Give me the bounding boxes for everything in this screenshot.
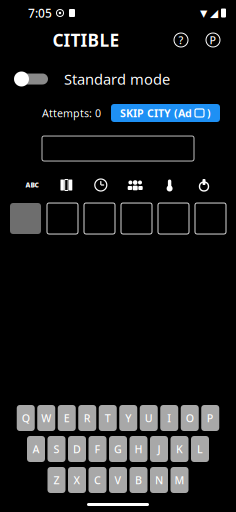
button[interactable]: X: [68, 467, 86, 493]
button[interactable]: C: [88, 467, 106, 493]
staticText: SKIP CITY (Ad: [120, 106, 192, 120]
staticText: Z: [53, 473, 59, 487]
staticText: R: [84, 411, 91, 425]
button[interactable]: L: [191, 436, 209, 462]
staticText: ): [207, 106, 211, 120]
button[interactable]: Help: [172, 31, 190, 49]
staticText: T: [105, 411, 111, 425]
button[interactable]: F: [88, 436, 106, 462]
staticText: I: [167, 411, 171, 425]
staticText: A: [32, 442, 39, 456]
staticText: M: [174, 473, 184, 487]
staticText: E: [64, 411, 70, 425]
staticText: CITIBLE: [52, 28, 119, 51]
button[interactable]: P: [201, 405, 219, 431]
button[interactable]: M: [170, 467, 188, 493]
staticText: ABC: [25, 181, 38, 189]
staticText: B: [135, 473, 142, 487]
staticText: Q: [22, 411, 30, 425]
button[interactable]: K: [170, 436, 188, 462]
button[interactable]: I: [160, 405, 178, 431]
staticText: L: [197, 442, 203, 456]
staticText: J: [157, 442, 160, 456]
button[interactable]: Z: [47, 467, 65, 493]
staticText: ◢: [210, 7, 218, 19]
staticText: S: [53, 442, 59, 456]
staticText: G: [114, 442, 122, 456]
button[interactable]: U: [140, 405, 158, 431]
button[interactable]: J: [150, 436, 168, 462]
staticText: 7:05: [28, 5, 52, 21]
staticText: O: [186, 411, 194, 425]
button[interactable]: Q: [17, 405, 35, 431]
staticText: X: [73, 473, 80, 487]
staticText: F: [94, 442, 100, 456]
button[interactable]: W: [37, 405, 55, 431]
staticText: Attempts: 0: [42, 106, 101, 120]
staticText: P: [207, 411, 214, 425]
button[interactable]: R: [78, 405, 96, 431]
button[interactable]: A: [27, 436, 45, 462]
button[interactable]: S: [47, 436, 65, 462]
staticText: ▾: [200, 5, 207, 21]
button[interactable]: H: [129, 436, 147, 462]
button[interactable]: Profile: [204, 31, 222, 49]
staticText: V: [114, 473, 121, 487]
staticText: W: [41, 411, 51, 425]
button[interactable]: V: [109, 467, 127, 493]
button[interactable]: E: [58, 405, 76, 431]
staticText: Y: [125, 411, 131, 425]
staticText: Standard mode: [64, 69, 170, 89]
button[interactable]: SKIP CITY (Ad: [111, 104, 220, 122]
staticText: U: [145, 411, 153, 425]
button[interactable]: T: [99, 405, 117, 431]
button[interactable]: N: [150, 467, 168, 493]
button[interactable]: G: [109, 436, 127, 462]
staticText: N: [155, 473, 163, 487]
staticText: D: [73, 442, 81, 456]
button[interactable]: O: [181, 405, 199, 431]
button[interactable]: Y: [119, 405, 137, 431]
staticText: ?: [178, 33, 183, 47]
staticText: K: [176, 442, 183, 456]
staticText: C: [94, 473, 101, 487]
staticText: P: [209, 33, 216, 47]
button[interactable]: Standard mode toggle: [14, 71, 48, 87]
button[interactable]: B: [129, 467, 147, 493]
staticText: H: [134, 442, 142, 456]
button[interactable]: D: [68, 436, 86, 462]
